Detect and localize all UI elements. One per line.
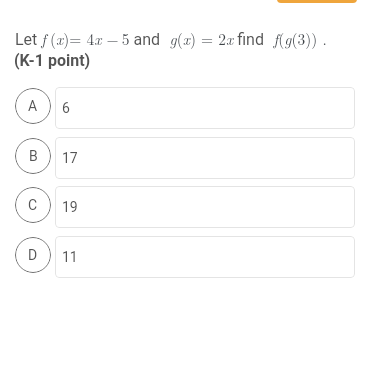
staticText: Let f (x)= 4x − 5 and g(x) = 2x find f(g… (15, 28, 327, 50)
staticText: C (28, 197, 38, 213)
staticText: D (28, 247, 38, 263)
staticText: 17 (62, 150, 78, 166)
staticText: (K-1 point) (14, 51, 91, 70)
button[interactable]: B (0, 137, 383, 179)
button[interactable]: Submit answer (277, 0, 357, 3)
staticText: 11 (62, 249, 78, 265)
button[interactable]: A (0, 87, 383, 129)
staticText: 6 (62, 100, 70, 116)
staticText: A (28, 98, 38, 114)
staticText: 19 (62, 199, 78, 215)
button[interactable]: D (0, 236, 383, 278)
staticText: B (29, 148, 38, 164)
button[interactable]: C (0, 186, 383, 228)
